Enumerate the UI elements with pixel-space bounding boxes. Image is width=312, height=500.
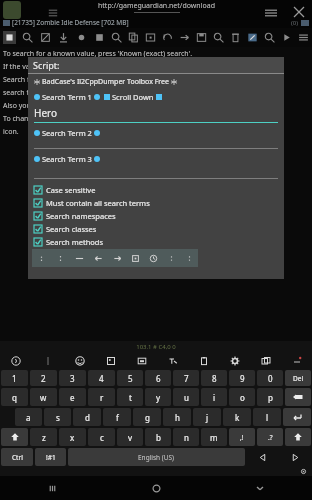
button[interactable]: Search classes xyxy=(34,222,278,235)
button[interactable]: 4 xyxy=(88,370,115,386)
button[interactable]: Region xyxy=(142,28,159,47)
button[interactable]: l xyxy=(253,408,281,426)
button[interactable]: 0 xyxy=(257,370,283,386)
button[interactable]: Case sensitive xyxy=(34,183,278,196)
button[interactable]: 8 xyxy=(201,370,227,386)
button[interactable]: Filter xyxy=(36,28,54,47)
button[interactable]: n xyxy=(173,428,199,446)
button[interactable]: j xyxy=(193,408,221,426)
button[interactable]: Close xyxy=(292,5,306,19)
button[interactable]: !#1 xyxy=(35,448,66,466)
button[interactable]: Settings xyxy=(219,352,250,369)
button[interactable]: Left xyxy=(247,448,278,466)
button[interactable]: Recents xyxy=(0,476,104,500)
button[interactable]: Emoji xyxy=(64,352,95,369)
button[interactable]: tilde xyxy=(70,249,89,267)
button[interactable]: ,! xyxy=(229,428,255,446)
button[interactable]: Split xyxy=(250,352,281,369)
button[interactable]: k xyxy=(223,408,251,426)
button[interactable]: 3 xyxy=(59,370,86,386)
button[interactable]: Find xyxy=(261,28,278,47)
button[interactable]: Undo xyxy=(159,28,176,47)
button[interactable]: o xyxy=(229,388,255,406)
button[interactable]: q xyxy=(1,388,28,406)
button[interactable]: 7 xyxy=(173,370,199,386)
button[interactable]: more1 xyxy=(162,249,180,267)
button[interactable]: v xyxy=(117,428,143,446)
button[interactable]: Play xyxy=(278,28,295,47)
button[interactable]: h xyxy=(163,408,191,426)
button[interactable]: ⇧ xyxy=(1,428,28,446)
button[interactable]: Forward xyxy=(176,28,193,47)
button[interactable]: .? xyxy=(257,428,283,446)
button[interactable]: Search namespaces xyxy=(34,209,278,222)
button[interactable]: Divider xyxy=(32,352,64,369)
button[interactable]: p xyxy=(257,388,283,406)
button[interactable]: More xyxy=(281,352,312,369)
button[interactable]: Voice xyxy=(0,352,32,369)
button[interactable]: c xyxy=(88,428,115,446)
button[interactable]: Memory xyxy=(90,28,108,47)
button[interactable]: w xyxy=(30,388,57,406)
button[interactable]: English (US) xyxy=(68,448,245,466)
button[interactable]: Search xyxy=(18,28,36,47)
button[interactable]: Must contain all search terms xyxy=(34,196,278,209)
button[interactable]: box xyxy=(126,249,144,267)
button[interactable]: Back xyxy=(208,476,312,500)
button[interactable]: right xyxy=(108,249,126,267)
button[interactable]: Delete xyxy=(227,28,244,47)
button[interactable]: Copy xyxy=(125,28,142,47)
button[interactable]: x xyxy=(59,428,86,446)
button[interactable]: Handwriting xyxy=(157,352,188,369)
button[interactable]: Hide keyboard xyxy=(300,468,307,475)
button[interactable]: left xyxy=(89,249,108,267)
button[interactable]: r xyxy=(88,388,115,406)
button[interactable]: y xyxy=(145,388,171,406)
button[interactable]: Stickers xyxy=(95,352,126,369)
button[interactable]: 9 xyxy=(229,370,255,386)
button[interactable]: f xyxy=(103,408,131,426)
button[interactable]: 2 xyxy=(30,370,57,386)
button[interactable]: Ctrl xyxy=(1,448,33,466)
button[interactable]: b xyxy=(145,428,171,446)
button[interactable]: Profile xyxy=(3,1,21,19)
button[interactable]: s xyxy=(44,408,71,426)
button[interactable]: Del xyxy=(285,370,311,386)
button[interactable]: ⌫ xyxy=(285,388,311,406)
button[interactable]: d xyxy=(73,408,101,426)
button[interactable]: t xyxy=(117,388,143,406)
button[interactable]: ⏎ xyxy=(283,408,311,426)
button[interactable]: Right xyxy=(280,448,311,466)
button[interactable]: z xyxy=(30,428,57,446)
button[interactable]: Search 2 xyxy=(108,28,125,47)
button[interactable]: ⇧ xyxy=(285,428,311,446)
button[interactable]: Menu xyxy=(264,6,278,20)
button[interactable]: Hero xyxy=(34,106,278,123)
button[interactable]: more2 xyxy=(180,249,198,267)
button[interactable]: a xyxy=(15,408,42,426)
button[interactable]: g xyxy=(133,408,161,426)
button[interactable]: Query xyxy=(210,28,227,47)
button[interactable]: 5 xyxy=(117,370,143,386)
button[interactable]: m xyxy=(201,428,227,446)
button[interactable]: u xyxy=(173,388,199,406)
button[interactable]: Stop xyxy=(0,28,18,47)
button[interactable]: Save xyxy=(193,28,210,47)
button[interactable]: history xyxy=(144,249,162,267)
button[interactable]: colon xyxy=(51,249,70,267)
button[interactable]: e xyxy=(59,388,86,406)
button[interactable]: Tabs xyxy=(46,6,60,20)
button[interactable]: 6 xyxy=(145,370,171,386)
button[interactable]: Point xyxy=(72,28,90,47)
button[interactable]: Save value xyxy=(54,28,72,47)
button[interactable]: 1 xyxy=(1,370,28,386)
button[interactable]: Clipboard xyxy=(188,352,219,369)
button[interactable]: Edit xyxy=(244,28,261,47)
button[interactable]: Home xyxy=(104,476,208,500)
button[interactable]: i xyxy=(201,388,227,406)
button[interactable]: GIF xyxy=(126,352,157,369)
button[interactable]: More xyxy=(295,28,312,47)
button[interactable]: Search methods xyxy=(34,235,278,248)
